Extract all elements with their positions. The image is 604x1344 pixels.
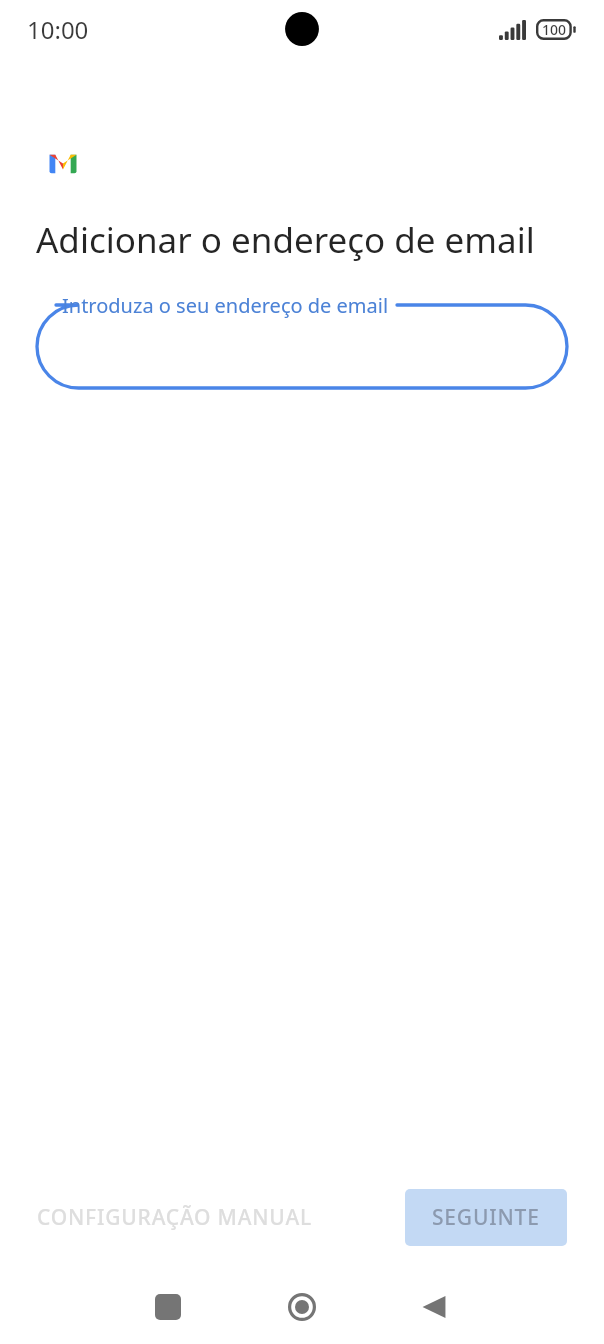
staticText: CONFIGURAÇÃO MANUAL: [37, 1203, 312, 1232]
staticText: Adicionar o endereço de email: [36, 216, 535, 264]
staticText: 10:00: [27, 13, 89, 46]
button[interactable]: Home: [276, 1281, 328, 1333]
button[interactable]: SEGUINTE: [405, 1189, 567, 1246]
staticText: SEGUINTE: [432, 1203, 540, 1232]
button[interactable]: Recents: [142, 1281, 194, 1333]
button[interactable]: Back: [408, 1281, 460, 1333]
button[interactable]: CONFIGURAÇÃO MANUAL: [30, 1192, 319, 1243]
button[interactable]: [37, 292, 567, 392]
staticText: 100: [542, 20, 567, 39]
